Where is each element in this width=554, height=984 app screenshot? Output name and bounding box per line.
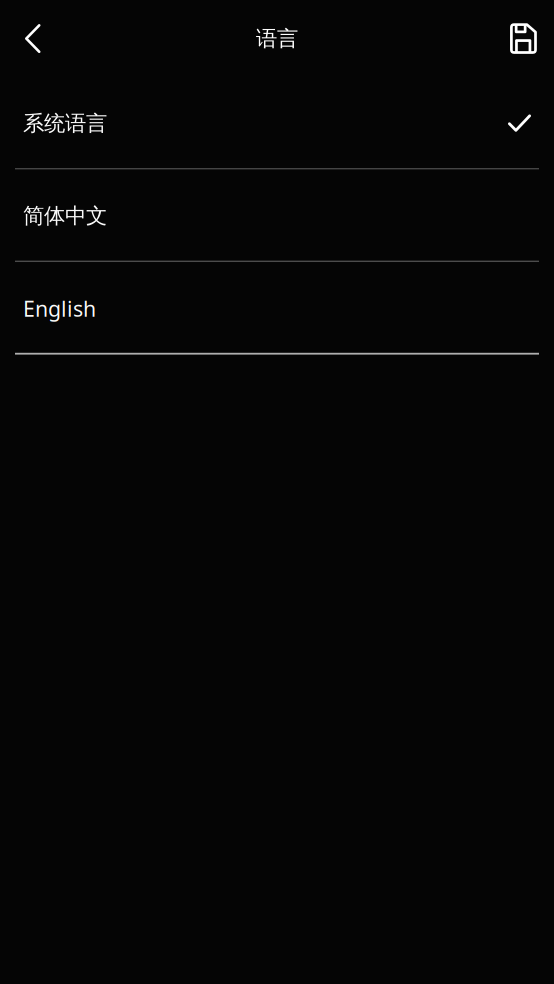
staticText: 系统语言	[23, 110, 107, 136]
staticText: English	[23, 294, 96, 322]
button[interactable]: 系统语言	[0, 77, 554, 170]
staticText: 简体中文	[23, 203, 107, 229]
button[interactable]: Back	[0, 0, 56, 77]
staticText: 语言	[256, 25, 298, 52]
button[interactable]: English	[0, 262, 554, 355]
button[interactable]: Save	[494, 0, 554, 77]
button[interactable]: 简体中文	[0, 170, 554, 262]
